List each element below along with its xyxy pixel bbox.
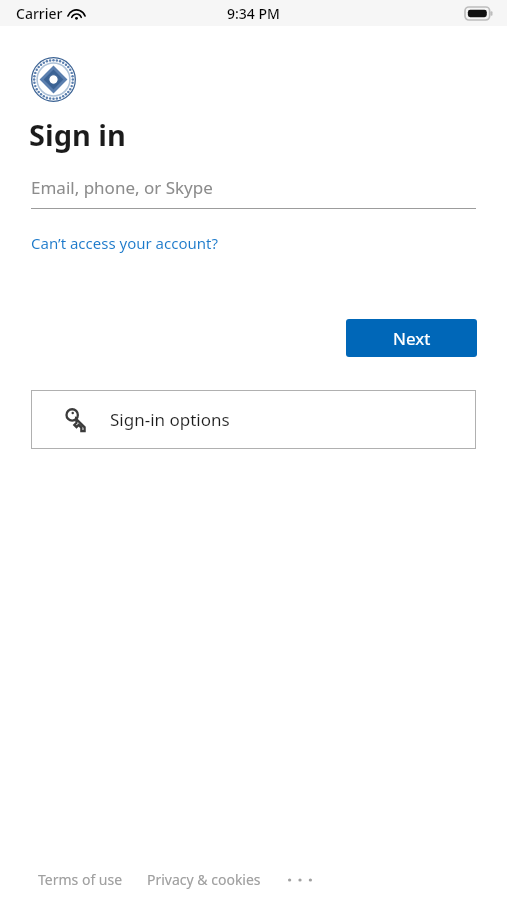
staticText: Sign-in options [110, 408, 230, 431]
staticText: Terms of use [38, 870, 123, 889]
button[interactable]: Privacy & cookies [147, 864, 261, 895]
button[interactable]: More options [283, 868, 317, 892]
button[interactable]: Can’t access your account? [31, 233, 218, 253]
staticText: Next [393, 327, 431, 350]
staticText: Can’t access your account? [31, 233, 218, 253]
button[interactable]: Email, phone, or Skype [31, 176, 476, 209]
staticText: Sign in [29, 115, 126, 154]
button[interactable]: Terms of use [38, 864, 123, 895]
button[interactable]: Next [346, 319, 477, 357]
staticText: Carrier [16, 4, 63, 23]
staticText: 9:34 PM [227, 4, 280, 23]
staticText: Email, phone, or Skype [31, 176, 213, 199]
button[interactable]: Sign-in options [31, 390, 476, 449]
staticText: Privacy & cookies [147, 870, 261, 889]
other: Organization logo [31, 57, 76, 102]
